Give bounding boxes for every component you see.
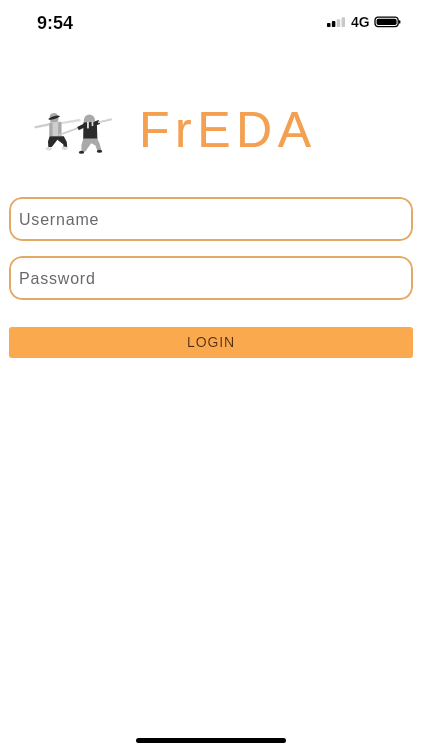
staticText: 9:54 xyxy=(37,13,74,33)
button[interactable]: LOGIN xyxy=(9,327,413,358)
staticText: LOGIN xyxy=(187,334,236,350)
other: FrEDA dancers logo xyxy=(32,112,118,156)
button[interactable]: Password xyxy=(9,256,413,300)
staticText: Username xyxy=(19,211,100,229)
staticText: Password xyxy=(19,270,96,288)
button[interactable]: Username xyxy=(9,197,413,241)
staticText: FrEDA xyxy=(139,102,317,158)
staticText: 4G xyxy=(351,14,370,30)
